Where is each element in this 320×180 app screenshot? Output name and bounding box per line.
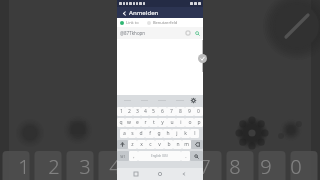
staticText: v	[158, 141, 161, 148]
button[interactable]	[171, 98, 189, 103]
button[interactable]: s	[128, 129, 136, 138]
button[interactable]: a	[120, 129, 128, 138]
staticText: n	[176, 141, 180, 148]
button[interactable]	[136, 98, 153, 103]
button[interactable]: 6	[158, 107, 167, 116]
staticText: p	[197, 119, 201, 126]
staticText: 8	[229, 153, 241, 180]
button[interactable]: Confirm	[198, 54, 207, 63]
staticText: y	[161, 119, 164, 126]
button[interactable]: 4	[141, 107, 149, 116]
button[interactable]: Space	[138, 151, 181, 161]
staticText: 2	[48, 153, 60, 180]
button[interactable]: Benutzerfeld	[147, 20, 178, 25]
button[interactable]: ,	[129, 151, 138, 161]
button[interactable]: k	[181, 129, 190, 138]
staticText: ,	[133, 153, 135, 160]
button[interactable]: Backspace	[191, 140, 203, 149]
button[interactable]: Back	[120, 9, 128, 17]
button[interactable]: Search	[190, 151, 203, 161]
button[interactable]: 5	[149, 107, 158, 116]
button[interactable]: b	[164, 140, 173, 149]
staticText: 9	[260, 153, 272, 180]
button[interactable]: p	[194, 118, 203, 127]
staticText: 8	[179, 108, 182, 115]
button[interactable]: y	[158, 118, 167, 127]
staticText: t	[153, 119, 155, 126]
staticText: a	[123, 130, 126, 137]
button[interactable]: o	[185, 118, 194, 127]
staticText: 3	[79, 153, 91, 180]
staticText: 3	[136, 108, 139, 115]
button[interactable]: Keyboard settings	[189, 96, 198, 105]
button[interactable]: x	[137, 140, 146, 149]
staticText: j	[176, 130, 178, 137]
button[interactable]: w	[125, 118, 133, 127]
button[interactable]: i	[176, 118, 185, 127]
button[interactable]: Recents	[131, 169, 141, 179]
button[interactable]: e	[133, 118, 141, 127]
button[interactable]: n	[173, 140, 182, 149]
button[interactable]: Clear	[185, 30, 191, 36]
button[interactable]: Search	[194, 30, 200, 36]
staticText: 2	[128, 108, 131, 115]
staticText: 4	[109, 153, 121, 180]
button[interactable]: Link to	[120, 20, 139, 25]
staticText: 0	[290, 153, 302, 180]
staticText: 5	[152, 108, 155, 115]
button[interactable]: v	[155, 140, 164, 149]
staticText: 9	[188, 108, 191, 115]
staticText: @87Tkhopn	[120, 30, 146, 36]
button[interactable]: q	[117, 118, 125, 127]
button[interactable]: Back	[179, 169, 189, 179]
button[interactable]: m	[182, 140, 191, 149]
button[interactable]	[153, 98, 171, 103]
button[interactable]: t	[149, 118, 158, 127]
staticText: q	[119, 119, 123, 126]
staticText: 7	[170, 108, 173, 115]
button[interactable]: d	[136, 129, 145, 138]
button[interactable]: !#1	[117, 151, 129, 161]
button[interactable]: g	[154, 129, 163, 138]
button[interactable]: .	[181, 151, 190, 161]
button[interactable]: h	[163, 129, 172, 138]
staticText: z	[131, 141, 134, 148]
staticText: f	[149, 130, 151, 137]
staticText: u	[170, 119, 174, 126]
button[interactable]: 2	[125, 107, 133, 116]
staticText: 1	[18, 153, 30, 180]
button[interactable]	[119, 98, 136, 103]
button[interactable]: c	[146, 140, 155, 149]
button[interactable]: 7	[167, 107, 176, 116]
button[interactable]: Home	[155, 169, 165, 179]
button[interactable]: Shift	[117, 140, 128, 149]
button[interactable]: z	[128, 140, 137, 149]
button[interactable]: 8	[176, 107, 185, 116]
staticText: w	[127, 119, 131, 126]
staticText: x	[140, 141, 143, 148]
staticText: d	[139, 130, 143, 137]
button[interactable]: @87Tkhopn	[117, 27, 203, 39]
staticText: b	[167, 141, 171, 148]
staticText: 7	[199, 153, 211, 180]
button[interactable]: j	[172, 129, 181, 138]
staticText: .	[185, 153, 187, 160]
staticText: l	[194, 130, 196, 137]
staticText: !#1	[120, 154, 126, 159]
staticText: c	[149, 141, 152, 148]
button[interactable]: 3	[133, 107, 141, 116]
staticText: o	[188, 119, 192, 126]
staticText: Anmelden	[129, 9, 159, 17]
button[interactable]: l	[190, 129, 199, 138]
button[interactable]: 0	[194, 107, 203, 116]
staticText: g	[157, 130, 161, 137]
button[interactable]: 1	[117, 107, 125, 116]
staticText: 6	[169, 153, 181, 180]
staticText: 0	[197, 108, 200, 115]
staticText: 4	[144, 108, 147, 115]
staticText: English (US)	[151, 154, 168, 158]
button[interactable]: u	[167, 118, 176, 127]
button[interactable]: 9	[185, 107, 194, 116]
button[interactable]: r	[141, 118, 149, 127]
button[interactable]: f	[145, 129, 154, 138]
